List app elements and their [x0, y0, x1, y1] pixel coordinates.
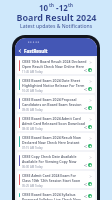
- button[interactable]: Share: [83, 182, 87, 186]
- staticText: Latest updates & Notifications: [20, 23, 93, 30]
- button[interactable]: Share: [83, 163, 87, 167]
- button[interactable]: WhatsApp: [88, 194, 92, 198]
- staticText: Admit Card Released Soon Download: [22, 121, 85, 126]
- staticText: Declared Now Check Here Instant: [22, 140, 80, 145]
- button[interactable]: Share: [83, 194, 87, 198]
- button[interactable]: Open: [88, 79, 92, 83]
- button[interactable]: CBSE 10th Board Result 2024 Declared: [17, 57, 95, 74]
- button[interactable]: Open: [88, 98, 92, 102]
- staticText: 07:15 AM Today: [22, 146, 43, 150]
- staticText: 09:05 AM Today: [22, 108, 43, 112]
- button[interactable]: WhatsApp: [88, 163, 92, 167]
- button[interactable]: CBSE Board Exam 2024 Syllabus: [17, 190, 95, 200]
- staticText: 11:45 AM Today: [22, 70, 43, 74]
- staticText: -12: [54, 2, 68, 13]
- button[interactable]: Open: [88, 155, 92, 159]
- button[interactable]: Open: [88, 117, 92, 121]
- staticText: CBSE Board Exam 2024 Result Now: [22, 135, 81, 140]
- staticText: 10:20 AM Today: [22, 89, 43, 93]
- button[interactable]: WhatsApp: [88, 182, 92, 186]
- button[interactable]: WhatsApp: [88, 87, 92, 91]
- button[interactable]: Open: [88, 60, 92, 64]
- button[interactable]: Open: [88, 193, 92, 197]
- staticText: CBSE Board Exam 2024 Syllabus: [22, 192, 76, 197]
- button[interactable]: WhatsApp: [88, 68, 92, 72]
- staticText: CBSE Admit Card 2024 Exam For: [22, 173, 77, 178]
- button[interactable]: WhatsApp: [88, 106, 92, 110]
- staticText: th: [49, 2, 54, 8]
- staticText: Class 10th 12th Session Start Soon: [22, 178, 81, 183]
- staticText: CBSE Board Exam 2024 Proposal: [22, 97, 77, 102]
- button[interactable]: Share: [83, 106, 87, 110]
- button[interactable]: WhatsApp: [88, 125, 92, 129]
- staticText: Candidates on Board Exam Session: [22, 102, 82, 107]
- staticText: FastResult: [24, 48, 48, 54]
- button[interactable]: WhatsApp: [88, 144, 92, 148]
- staticText: 08:30 AM Today: [22, 127, 43, 131]
- staticText: Highlighted Notice Release For Term: [22, 83, 85, 88]
- staticText: CBSE Copy Check Date Available: [22, 154, 77, 159]
- button[interactable]: Share: [83, 125, 87, 129]
- staticText: Available For Viewing Copy Now: [22, 159, 77, 164]
- button[interactable]: Back: [16, 47, 23, 54]
- staticText: CBSE Board Exam 2024 Date Sheet: [22, 78, 81, 83]
- staticText: CBSE 10th Board Result 2024 Declared: [22, 59, 87, 64]
- button[interactable]: CBSE Admit Card 2024 Exam For: [17, 171, 95, 188]
- staticText: Proposed Syllabus Live Check Now: [22, 197, 81, 200]
- button[interactable]: CBSE Board Exam 2024 Admit Card: [17, 114, 95, 131]
- staticText: 06:00 AM Today: [22, 165, 43, 169]
- button[interactable]: CBSE Board Exam 2024 Result Now: [17, 133, 95, 150]
- button[interactable]: CBSE Board Exam 2024 Proposal: [17, 95, 95, 112]
- staticText: Board Result 2024: [16, 11, 97, 23]
- button[interactable]: Open: [88, 174, 92, 178]
- staticText: th: [68, 2, 73, 8]
- staticText: Open Result Check Now Online Here: [22, 64, 84, 69]
- staticText: 10: [39, 2, 49, 13]
- button[interactable]: Open: [88, 136, 92, 140]
- button[interactable]: Share: [83, 144, 87, 148]
- button[interactable]: Share: [83, 68, 87, 72]
- staticText: 05:25 AM Today: [22, 184, 43, 188]
- button[interactable]: Share: [83, 87, 87, 91]
- button[interactable]: CBSE Copy Check Date Available: [17, 152, 95, 169]
- button[interactable]: CBSE Board Exam 2024 Date Sheet: [17, 76, 95, 93]
- staticText: CBSE Board Exam 2024 Admit Card: [22, 116, 81, 121]
